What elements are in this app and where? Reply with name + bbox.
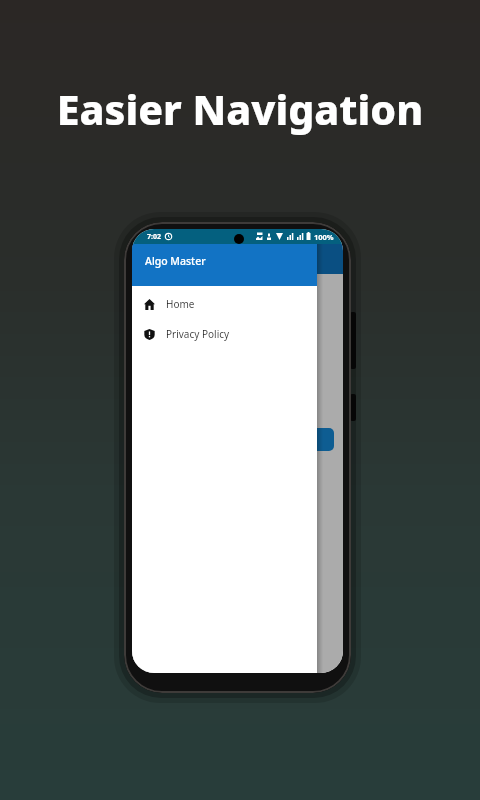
staticText: 100% bbox=[314, 232, 334, 242]
staticText: 7:02 bbox=[147, 232, 161, 242]
button[interactable] bbox=[310, 428, 334, 451]
staticText: Algo Master bbox=[145, 254, 206, 268]
staticText: Home bbox=[166, 297, 195, 311]
button[interactable]: Home bbox=[132, 289, 317, 319]
button[interactable]: Privacy Policy bbox=[132, 319, 317, 349]
button[interactable]: Algo Master bbox=[132, 244, 317, 286]
staticText: Privacy Policy bbox=[166, 327, 230, 341]
staticText: Easier Navigation bbox=[0, 81, 480, 137]
